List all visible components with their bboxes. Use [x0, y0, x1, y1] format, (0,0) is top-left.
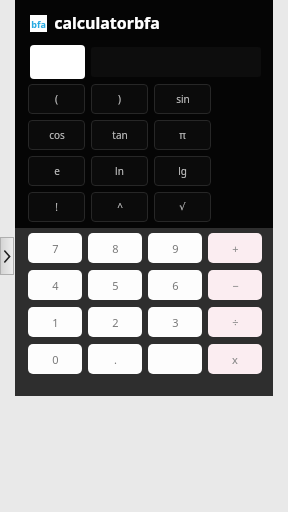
staticText: ln — [115, 164, 124, 178]
button[interactable]: 1 — [28, 307, 82, 337]
staticText: + — [232, 241, 239, 256]
staticText: ( — [55, 92, 58, 106]
button[interactable]: ) — [91, 84, 148, 114]
staticText: √ — [179, 201, 186, 213]
staticText: 9 — [172, 241, 179, 256]
button[interactable]: 0 — [28, 344, 82, 374]
staticText: lg — [178, 164, 187, 178]
staticText: 4 — [52, 278, 59, 293]
staticText: ^ — [117, 200, 123, 214]
button[interactable]: + — [208, 233, 262, 263]
button[interactable]: lg — [154, 156, 211, 186]
button[interactable]: − — [208, 270, 262, 300]
staticText: ) — [118, 92, 121, 106]
button[interactable]: 3 — [148, 307, 202, 337]
button[interactable]: π — [154, 120, 211, 150]
staticText: tan — [112, 128, 128, 142]
staticText: sin — [176, 92, 190, 106]
staticText: − — [232, 278, 239, 293]
button[interactable]: sin — [154, 84, 211, 114]
button[interactable]: ^ — [91, 192, 148, 222]
button[interactable]: ÷ — [208, 307, 262, 337]
staticText: 5 — [112, 278, 119, 293]
button[interactable]: e — [28, 156, 85, 186]
button[interactable]: Open panel — [0, 237, 14, 275]
staticText: cos — [49, 128, 65, 142]
staticText: 6 — [172, 278, 179, 293]
staticText: 1 — [52, 315, 59, 330]
staticText: π — [179, 128, 186, 142]
button[interactable] — [30, 45, 85, 79]
button[interactable]: 8 — [88, 233, 142, 263]
staticText: x — [232, 352, 238, 367]
button[interactable]: x — [208, 344, 262, 374]
staticText: 7 — [52, 241, 59, 256]
button[interactable]: 7 — [28, 233, 82, 263]
button[interactable] — [148, 344, 202, 374]
button[interactable]: 4 — [28, 270, 82, 300]
staticText: . — [114, 352, 117, 367]
staticText: bfa — [31, 18, 46, 30]
button[interactable]: 6 — [148, 270, 202, 300]
button[interactable]: tan — [91, 120, 148, 150]
staticText: 8 — [112, 241, 119, 256]
button[interactable]: √ — [154, 192, 211, 222]
button[interactable]: cos — [28, 120, 85, 150]
staticText: ! — [55, 200, 58, 214]
staticText: 2 — [112, 315, 119, 330]
button[interactable]: ln — [91, 156, 148, 186]
button[interactable]: 9 — [148, 233, 202, 263]
button[interactable]: ! — [28, 192, 85, 222]
button[interactable]: 5 — [88, 270, 142, 300]
staticText: ÷ — [232, 315, 239, 330]
button[interactable]: . — [88, 344, 142, 374]
staticText: 0 — [52, 352, 59, 367]
button[interactable]: 2 — [88, 307, 142, 337]
staticText: e — [54, 164, 60, 178]
staticText: 3 — [172, 315, 179, 330]
staticText: calculatorbfa — [54, 12, 160, 34]
button[interactable]: ( — [28, 84, 85, 114]
